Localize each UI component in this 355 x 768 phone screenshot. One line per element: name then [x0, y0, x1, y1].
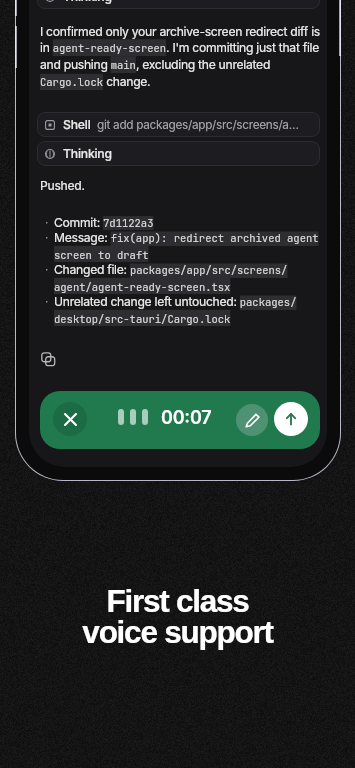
staticText: ·: [45, 262, 49, 277]
button[interactable]: Copy message: [40, 351, 56, 367]
staticText: Pushed.: [40, 178, 85, 193]
staticText: Thinking: [63, 0, 112, 4]
staticText: Shell: [63, 117, 91, 132]
staticText: Commit: 7d1122a3: [54, 215, 154, 230]
staticText: ·: [45, 294, 49, 309]
button[interactable]: Edit transcript: [236, 404, 268, 436]
staticText: git add packages/app/src/screens/a…: [97, 118, 299, 132]
button[interactable]: Shell: [37, 112, 320, 137]
staticText: 00:07: [161, 407, 212, 429]
staticText: First class voice support: [82, 583, 273, 650]
button[interactable]: Cancel recording: [53, 402, 87, 436]
button[interactable]: Thinking: [37, 0, 320, 9]
staticText: Thinking: [63, 146, 112, 161]
staticText: Message: fix(app): redirect archived age…: [54, 230, 324, 262]
staticText: I confirmed only your archive-screen red…: [40, 24, 322, 90]
staticText: Unrelated change left untouched: package…: [54, 294, 324, 326]
staticText: ·: [45, 230, 49, 245]
button[interactable]: Send recording: [274, 402, 308, 436]
button[interactable]: Thinking: [37, 141, 320, 166]
staticText: Changed file: packages/app/src/screens/a…: [54, 262, 324, 294]
staticText: ·: [45, 215, 49, 230]
